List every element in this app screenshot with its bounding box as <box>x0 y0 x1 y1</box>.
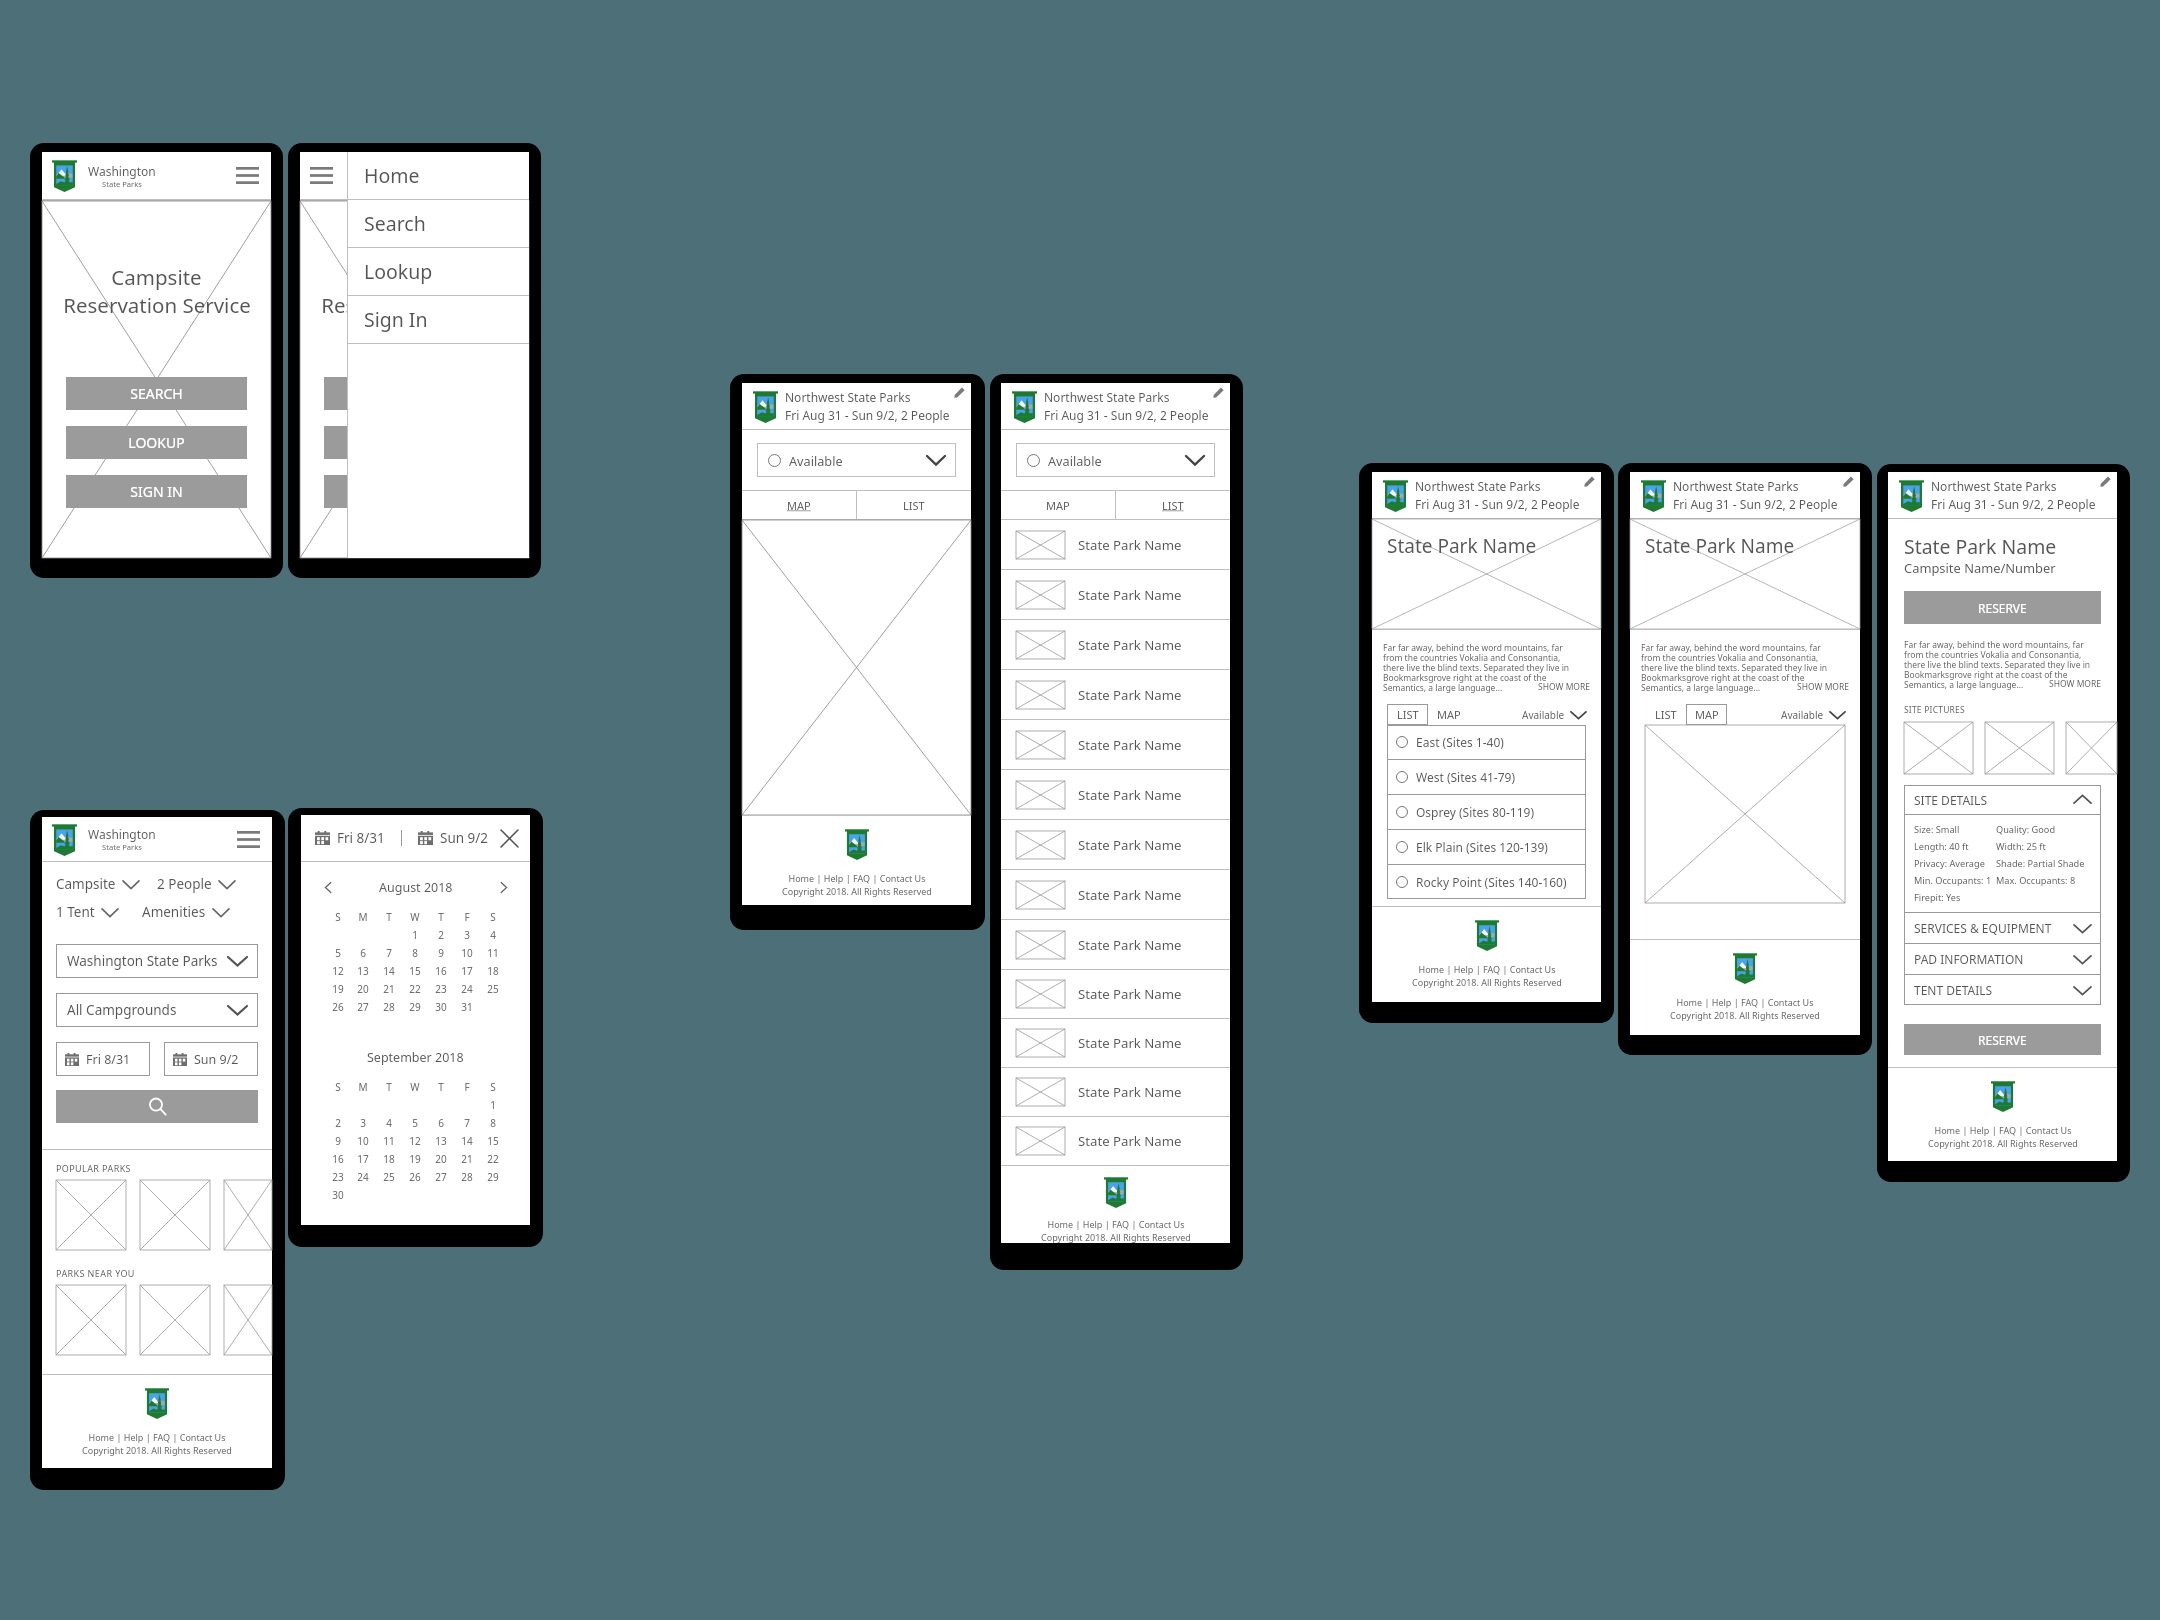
button[interactable]: 3 <box>464 928 470 942</box>
button[interactable]: Menu <box>237 831 260 848</box>
button[interactable]: Close <box>501 830 518 847</box>
button[interactable]: State Park Name <box>1016 920 1215 969</box>
button[interactable]: 22 <box>409 982 421 996</box>
button[interactable]: 6 <box>438 1116 444 1130</box>
button[interactable]: LIST <box>857 491 971 519</box>
button[interactable]: RESERVE <box>1904 591 2101 624</box>
button[interactable]: Edit <box>2100 476 2111 487</box>
button[interactable]: SIGN IN <box>324 475 505 508</box>
button[interactable]: LIST <box>1387 704 1428 725</box>
button[interactable]: SEARCH <box>324 377 505 410</box>
button[interactable]: All Campgrounds <box>67 993 247 1027</box>
button[interactable]: 31 <box>461 1000 473 1014</box>
button[interactable]: 30 <box>332 1188 344 1202</box>
button[interactable]: LOOKUP <box>324 426 505 459</box>
button[interactable]: 10 <box>461 946 473 960</box>
button[interactable]: Amenities <box>142 903 229 921</box>
button[interactable]: 4 <box>490 928 496 942</box>
button[interactable]: MAP <box>742 491 856 519</box>
button[interactable]: 13 <box>435 1134 447 1148</box>
button[interactable]: Edit <box>954 387 965 398</box>
button[interactable]: 20 <box>357 982 369 996</box>
button[interactable]: 17 <box>357 1152 369 1166</box>
button[interactable]: LIST <box>1645 704 1686 725</box>
button[interactable]: 18 <box>487 964 499 978</box>
button[interactable]: Rocky Point (Sites 140-160) <box>1396 865 1577 899</box>
button[interactable]: Sun 9/2 <box>418 829 489 847</box>
button[interactable]: State Park Name <box>1016 1117 1215 1165</box>
button[interactable]: 9 <box>335 1134 341 1148</box>
button[interactable]: SHOW MORE <box>1538 681 1590 693</box>
button[interactable]: TENT DETAILS <box>1914 975 2091 1005</box>
button[interactable]: Fri 8/31 <box>65 1042 141 1076</box>
button[interactable]: 28 <box>383 1000 395 1014</box>
button[interactable]: MAP <box>1428 704 1469 725</box>
button[interactable]: Search <box>56 1090 258 1123</box>
button[interactable]: Sign In <box>347 296 529 343</box>
button[interactable]: Campsite <box>56 875 139 893</box>
button[interactable]: 8 <box>412 946 418 960</box>
button[interactable]: 8 <box>490 1116 496 1130</box>
button[interactable]: East (Sites 1-40) <box>1396 725 1577 759</box>
button[interactable]: 9 <box>438 946 444 960</box>
button[interactable]: State Park Name <box>1016 670 1215 719</box>
button[interactable]: Available <box>1522 708 1586 722</box>
button[interactable]: Previous month <box>321 881 334 894</box>
button[interactable]: MAP <box>1001 491 1115 519</box>
button[interactable]: Next month <box>497 881 510 894</box>
button[interactable]: Home <box>347 152 529 199</box>
button[interactable]: 30 <box>435 1000 447 1014</box>
button[interactable]: 7 <box>386 946 392 960</box>
button[interactable]: State Park Name <box>1016 520 1215 569</box>
button[interactable]: 11 <box>487 946 499 960</box>
button[interactable]: 27 <box>435 1170 447 1184</box>
button[interactable]: 10 <box>357 1134 369 1148</box>
button[interactable]: 15 <box>487 1134 499 1148</box>
button[interactable]: State Park Name <box>1016 1019 1215 1067</box>
button[interactable]: Elk Plain (Sites 120-139) <box>1396 830 1577 864</box>
button[interactable]: SITE DETAILS <box>1914 785 2091 814</box>
button[interactable]: 29 <box>487 1170 499 1184</box>
button[interactable]: SIGN IN <box>66 475 247 508</box>
button[interactable]: 21 <box>383 982 395 996</box>
button[interactable]: 24 <box>461 982 473 996</box>
button[interactable]: 14 <box>461 1134 473 1148</box>
button[interactable]: 2 People <box>157 875 235 893</box>
button[interactable]: Lookup <box>347 248 529 295</box>
button[interactable]: Washington State Parks <box>67 944 247 978</box>
button[interactable]: 1 <box>412 928 418 942</box>
button[interactable]: 2 <box>335 1116 341 1130</box>
button[interactable]: 5 <box>412 1116 418 1130</box>
button[interactable]: Sun 9/2 <box>173 1042 249 1076</box>
button[interactable]: Search <box>347 200 529 247</box>
button[interactable]: 16 <box>332 1152 344 1166</box>
button[interactable]: 25 <box>487 982 499 996</box>
button[interactable]: Edit <box>1584 476 1595 487</box>
button[interactable]: State Park Name <box>1016 820 1215 869</box>
button[interactable]: 27 <box>357 1000 369 1014</box>
button[interactable]: 25 <box>383 1170 395 1184</box>
button[interactable]: Fri 8/31 <box>315 829 385 847</box>
button[interactable]: SERVICES & EQUIPMENT <box>1914 913 2091 943</box>
button[interactable]: 7 <box>464 1116 470 1130</box>
button[interactable]: PAD INFORMATION <box>1914 944 2091 974</box>
button[interactable]: SHOW MORE <box>1797 681 1849 693</box>
button[interactable]: 5 <box>335 946 341 960</box>
button[interactable]: 2 <box>438 928 444 942</box>
button[interactable]: West (Sites 41-79) <box>1396 760 1577 794</box>
button[interactable]: 14 <box>383 964 395 978</box>
button[interactable]: Available <box>768 443 945 477</box>
button[interactable]: State Park Name <box>1016 1068 1215 1116</box>
button[interactable]: 18 <box>383 1152 395 1166</box>
button[interactable]: 21 <box>461 1152 473 1166</box>
button[interactable]: Edit <box>1843 476 1854 487</box>
button[interactable]: 12 <box>409 1134 421 1148</box>
button[interactable]: State Park Name <box>1016 770 1215 819</box>
button[interactable]: 22 <box>487 1152 499 1166</box>
button[interactable]: MAP <box>1686 704 1727 725</box>
button[interactable]: 13 <box>357 964 369 978</box>
button[interactable]: LOOKUP <box>66 426 247 459</box>
button[interactable]: RESERVE <box>1904 1024 2101 1055</box>
button[interactable]: 23 <box>435 982 447 996</box>
button[interactable]: Osprey (Sites 80-119) <box>1396 795 1577 829</box>
